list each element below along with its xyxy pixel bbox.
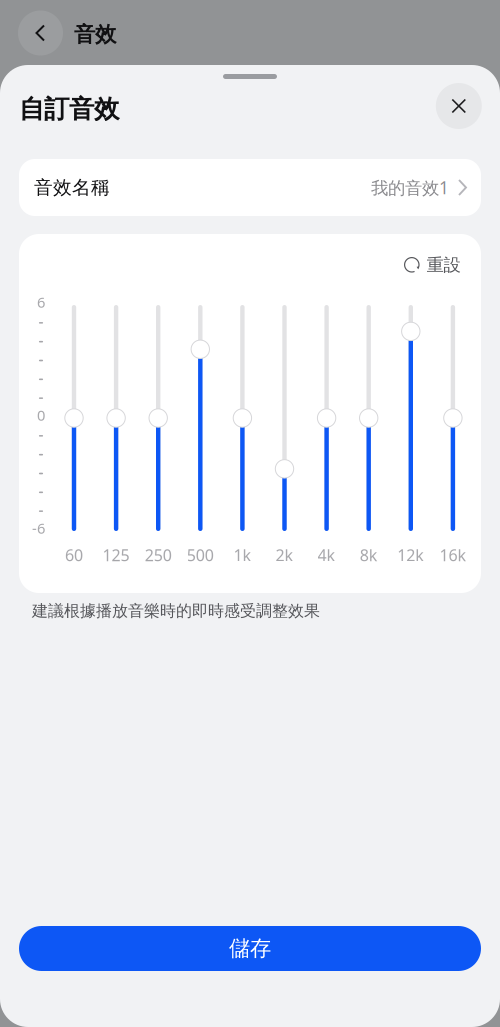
staticText: 音效 xyxy=(74,21,116,48)
staticText: 60 xyxy=(65,544,83,566)
staticText: 1k xyxy=(233,544,251,566)
button[interactable]: 音效名稱 xyxy=(19,159,481,216)
staticText: 重設 xyxy=(426,254,460,276)
button[interactable]: 重設 xyxy=(403,254,460,276)
staticText: 16k xyxy=(439,544,466,566)
staticText: 8k xyxy=(360,544,378,566)
staticText: -6 xyxy=(32,518,45,538)
staticText: 250 xyxy=(145,544,172,566)
staticText: 2k xyxy=(275,544,293,566)
button[interactable]: 儲存 xyxy=(19,926,481,971)
staticText: 音效名稱 xyxy=(34,176,110,199)
staticText: 0 xyxy=(37,405,45,425)
staticText: 12k xyxy=(397,544,424,566)
staticText: 儲存 xyxy=(229,935,271,962)
staticText: 建議根據播放音樂時的即時感受調整效果 xyxy=(32,601,320,621)
staticText: 6 xyxy=(37,292,45,312)
staticText: 我的音效1 xyxy=(371,176,449,199)
staticText: 自訂音效 xyxy=(19,93,119,124)
staticText: 125 xyxy=(103,544,130,566)
staticText: 4k xyxy=(318,544,336,566)
button[interactable]: Back xyxy=(18,10,63,55)
staticText: 500 xyxy=(187,544,214,566)
button[interactable]: Close xyxy=(436,83,482,129)
